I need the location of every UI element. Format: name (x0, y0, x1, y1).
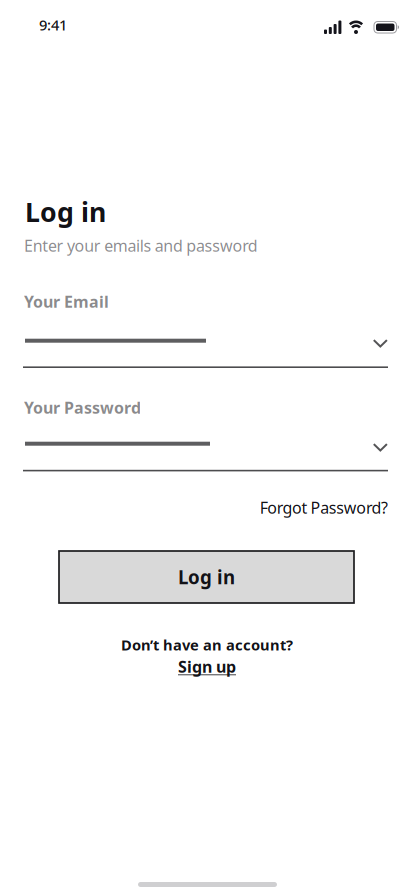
button[interactable]: Log in (59, 551, 354, 603)
staticText: Your Email (24, 291, 109, 312)
staticText: Sign up (178, 656, 236, 677)
staticText: Your Password (24, 397, 141, 418)
button[interactable]: Show options (373, 444, 387, 452)
staticText: Enter your emails and password (24, 235, 258, 256)
staticText: Forgot Password? (260, 497, 388, 518)
button[interactable]: Sign up (178, 656, 236, 677)
button[interactable]: Show options (373, 340, 387, 348)
staticText: Log in (178, 565, 235, 589)
button[interactable]: Forgot Password? (260, 497, 388, 518)
staticText: Log in (25, 194, 106, 229)
staticText: 9:41 (39, 15, 67, 34)
staticText: Don’t have an account? (121, 635, 293, 654)
